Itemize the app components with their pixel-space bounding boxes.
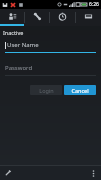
button[interactable]: Settings xyxy=(2,167,14,179)
button[interactable]: Voicemail xyxy=(76,9,101,26)
staticText: Login xyxy=(39,87,54,94)
staticText: 6:26 xyxy=(89,1,99,8)
staticText: User Name xyxy=(7,41,39,49)
staticText: Inactive xyxy=(3,29,24,36)
button[interactable]: User Name xyxy=(5,41,96,53)
staticText: Password xyxy=(5,64,33,72)
button[interactable]: More options xyxy=(87,167,99,179)
button[interactable]: Login xyxy=(30,85,62,95)
button[interactable]: Cancel xyxy=(64,85,96,95)
button[interactable]: Contacts xyxy=(0,9,24,26)
staticText: Cancel xyxy=(71,87,89,94)
button[interactable]: Recents xyxy=(50,9,75,26)
button[interactable]: Dialer xyxy=(25,9,49,26)
button[interactable]: Password xyxy=(5,64,96,76)
